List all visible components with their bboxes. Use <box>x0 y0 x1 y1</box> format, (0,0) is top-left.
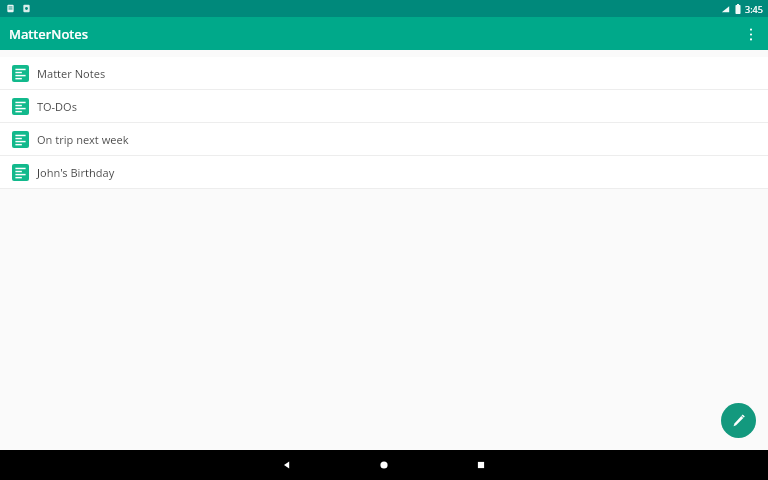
staticText: MatterNotes <box>9 25 89 43</box>
staticText: 3:45 <box>745 3 763 15</box>
button[interactable]: Recents <box>466 450 496 480</box>
staticText: John's Birthday <box>37 165 115 180</box>
button[interactable]: New note <box>721 403 756 438</box>
button[interactable]: Back <box>272 450 302 480</box>
staticText: TO-DOs <box>37 99 77 114</box>
button[interactable]: Matter Notes <box>0 57 768 89</box>
button[interactable]: More options <box>736 19 766 49</box>
button[interactable]: Home <box>369 450 399 480</box>
button[interactable]: On trip next week <box>0 123 768 155</box>
button[interactable]: TO-DOs <box>0 90 768 122</box>
button[interactable]: John's Birthday <box>0 156 768 188</box>
staticText: On trip next week <box>37 132 129 147</box>
staticText: Matter Notes <box>37 66 106 81</box>
